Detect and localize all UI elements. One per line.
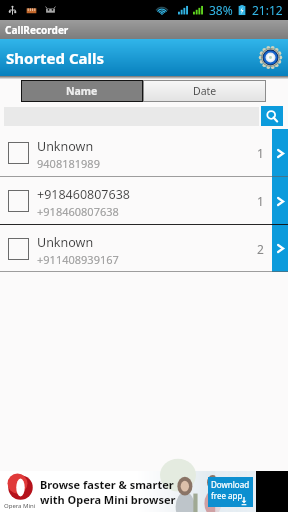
staticText: with Opera Mini browser xyxy=(40,492,176,507)
staticText: Download xyxy=(211,479,250,490)
staticText: 2 xyxy=(257,241,264,257)
staticText: 9408181989 xyxy=(37,156,100,171)
button[interactable]: Unknown xyxy=(0,129,288,177)
button[interactable] xyxy=(8,238,29,260)
button[interactable]: Open details xyxy=(272,129,288,177)
button[interactable] xyxy=(8,190,29,212)
staticText: Date xyxy=(193,84,217,98)
staticText: Opera Mini xyxy=(4,502,36,510)
button[interactable]: Unknown xyxy=(0,225,288,272)
staticText: Name xyxy=(66,84,98,98)
button[interactable]: Open details xyxy=(272,177,288,225)
staticText: Shorted Calls xyxy=(6,48,105,68)
button[interactable] xyxy=(8,142,29,164)
button[interactable]: Opera Mini xyxy=(0,471,256,512)
button[interactable]: Name xyxy=(22,81,142,101)
staticText: +911408939167 xyxy=(37,252,119,267)
button[interactable]: Search xyxy=(261,106,283,126)
button[interactable]: +918460807638 xyxy=(0,177,288,225)
button[interactable]: Date xyxy=(144,81,265,101)
staticText: 21:12 xyxy=(252,2,283,18)
button[interactable]: Open details xyxy=(272,225,288,272)
staticText: 1 xyxy=(257,193,264,209)
button[interactable]: Settings xyxy=(259,46,282,69)
staticText: 38% xyxy=(209,2,233,18)
staticText: Unknown xyxy=(37,138,94,155)
staticText: Unknown xyxy=(37,234,94,251)
staticText: free app xyxy=(211,490,243,501)
staticText: CallRecorder xyxy=(5,23,69,37)
button[interactable]: Download xyxy=(208,477,253,507)
staticText: Browse faster & smarter xyxy=(40,477,174,492)
staticText: 1 xyxy=(257,145,264,161)
staticText: +918460807638 xyxy=(37,186,130,203)
staticText: +918460807638 xyxy=(37,204,119,219)
